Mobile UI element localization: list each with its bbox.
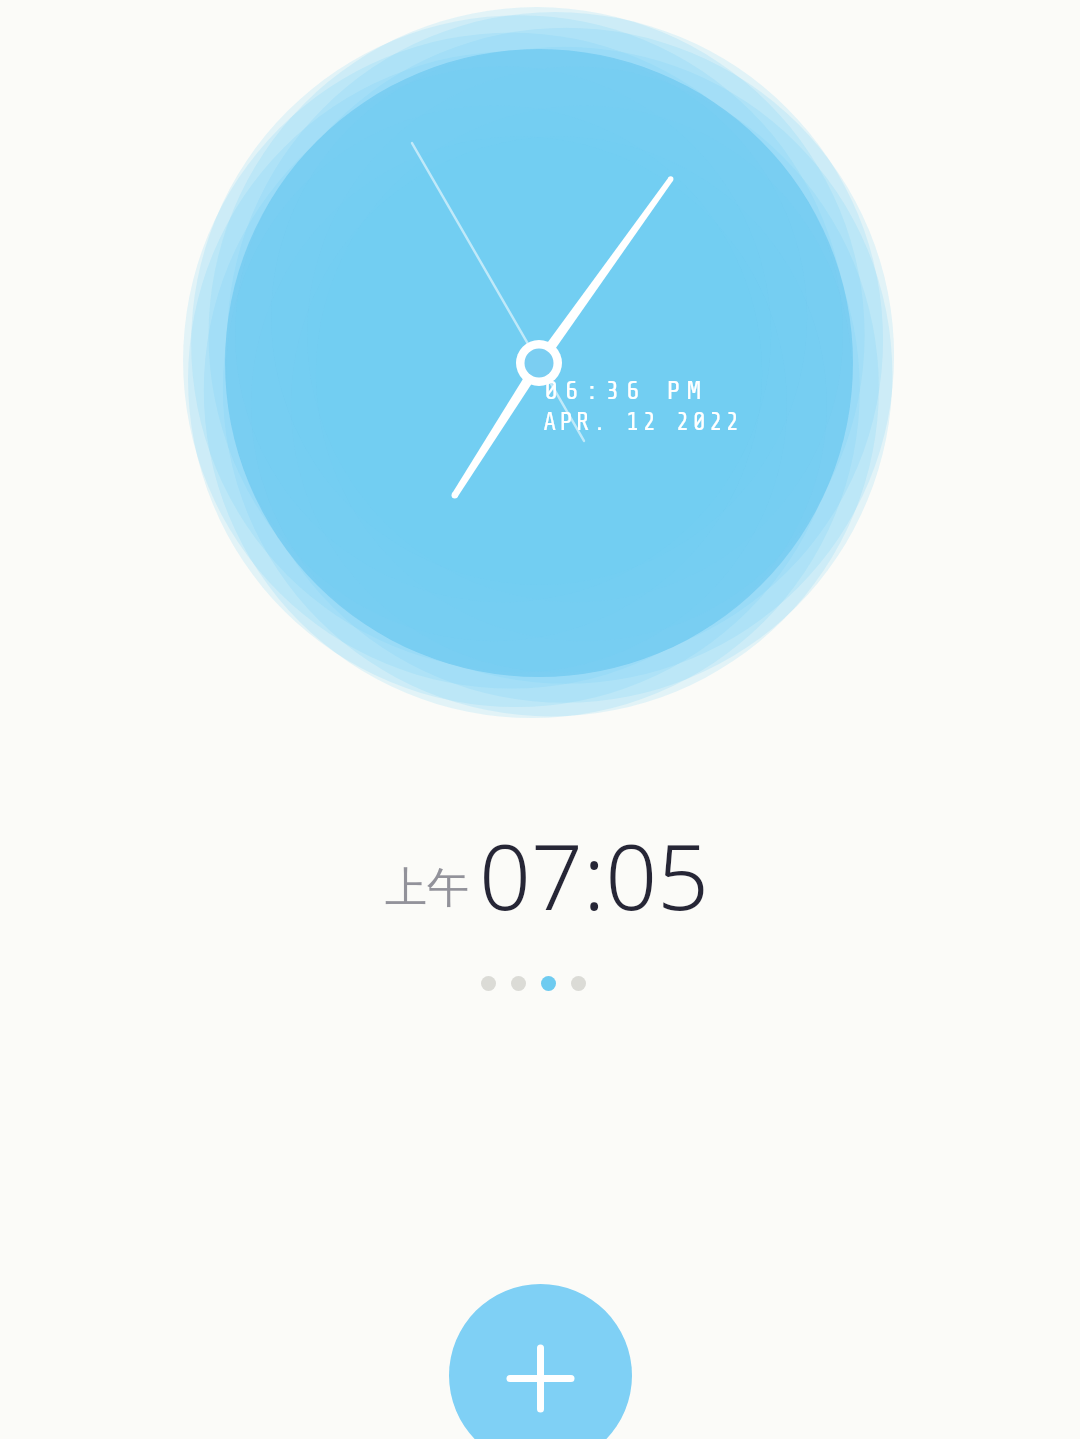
staticText: 07:05 xyxy=(479,813,710,933)
button[interactable]: Add alarm xyxy=(449,1284,632,1439)
button[interactable]: Page 3 of 4 xyxy=(541,976,556,991)
button[interactable]: Page 4 of 4 xyxy=(571,976,586,991)
button[interactable]: Page 1 of 4 xyxy=(481,976,496,991)
staticText: 06:36 PM xyxy=(544,376,708,406)
staticText: APR. 12 2022 xyxy=(543,408,743,436)
button[interactable]: Alarm clock face, 06:36 PM, APR. 12 2022 xyxy=(183,7,895,719)
button[interactable]: Page 2 of 4 xyxy=(511,976,526,991)
button[interactable]: 上午 xyxy=(7,813,1080,933)
staticText: 上午 xyxy=(385,862,469,915)
